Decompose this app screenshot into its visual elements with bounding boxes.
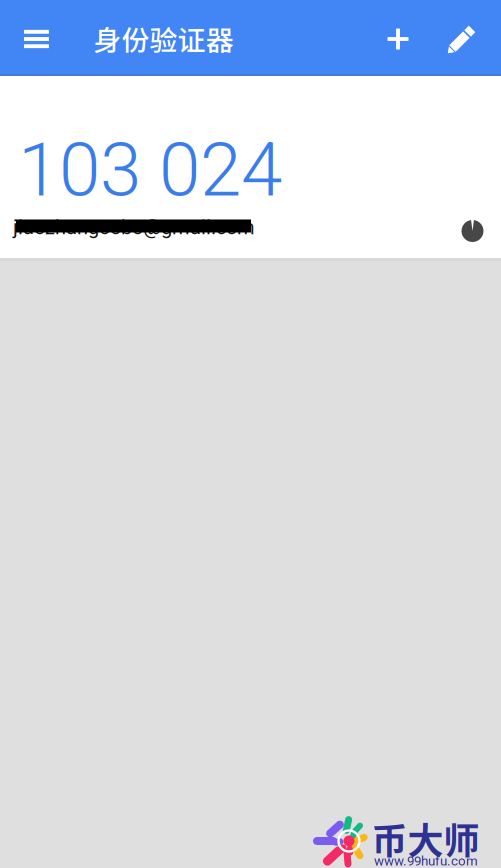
staticText: 103 024 (18, 126, 282, 214)
button[interactable]: 103 024 (0, 76, 501, 258)
button[interactable]: Menu (5, 1, 67, 76)
staticText: jiaozhangoobo@gmail.com (13, 216, 255, 239)
button[interactable]: Add account (370, 1, 426, 76)
button[interactable]: Edit accounts (434, 1, 490, 76)
staticText: 身份验证器 (93, 18, 233, 59)
staticText: www.99hufu.com (374, 853, 478, 868)
staticText: 币大师 (371, 812, 479, 864)
